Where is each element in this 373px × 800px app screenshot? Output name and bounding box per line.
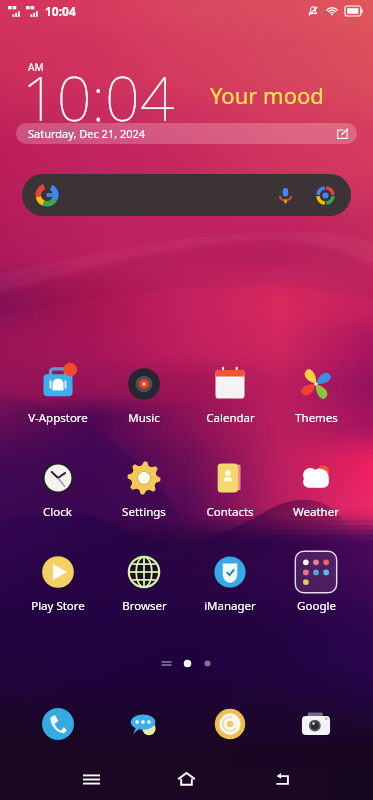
staticText: 10:04 [45,3,76,19]
staticText: Play Store [31,598,85,614]
staticText: V-Appstore [28,410,88,426]
button[interactable]: Clock [14,456,101,520]
button[interactable]: Home [165,758,207,800]
button[interactable]: Saturday, Dec 21, 2024 [16,123,357,144]
staticText: Themes [295,410,338,426]
button[interactable]: Browser [101,550,187,614]
staticText: Saturday, Dec 21, 2024 [28,126,146,141]
button[interactable]: Camera [297,705,335,743]
button[interactable]: Weather [273,456,359,520]
button[interactable]: Play Store [14,550,101,614]
staticText: Settings [122,504,166,520]
staticText: AM [28,60,44,74]
button[interactable]: Recents [70,758,112,800]
staticText: Calendar [206,410,255,426]
button[interactable]: Back [262,758,304,800]
staticText: Browser [122,598,167,614]
staticText: Your mood [210,80,324,110]
staticText: Weather [293,504,339,520]
button[interactable]: Music [101,362,187,426]
button[interactable]: iManager [187,550,273,614]
button[interactable]: Calendar [187,362,273,426]
button[interactable]: Settings [101,456,187,520]
button[interactable]: Messages [125,705,163,743]
staticText: Clock [43,504,72,520]
staticText: Contacts [206,504,254,520]
button[interactable]: V-Appstore [14,362,101,426]
button[interactable] [22,174,351,216]
staticText: iManager [204,598,256,614]
button[interactable]: Google [273,550,359,614]
button[interactable]: Phone [39,705,77,743]
button[interactable]: Themes [273,362,359,426]
button[interactable]: Browser [211,705,249,743]
button[interactable]: Contacts [187,456,273,520]
staticText: 10:04 [22,56,175,139]
staticText: Music [128,410,160,426]
staticText: Google [297,598,336,614]
